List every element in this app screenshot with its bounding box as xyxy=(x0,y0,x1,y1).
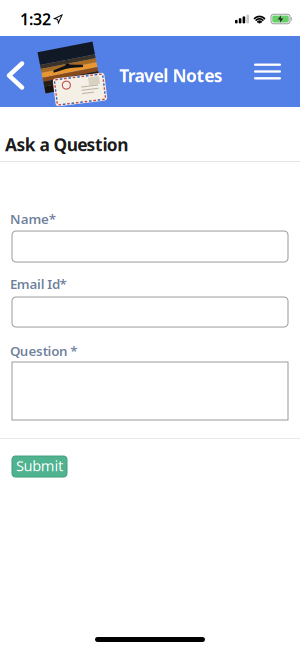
button[interactable]: Menu xyxy=(248,53,300,89)
staticText: Travel Notes xyxy=(119,64,223,87)
staticText: Question * xyxy=(10,342,77,360)
staticText: 1:32 xyxy=(20,8,51,30)
button[interactable]: Email Id xyxy=(12,297,288,327)
staticText: Name* xyxy=(10,210,56,228)
button[interactable]: Submit xyxy=(12,456,67,477)
button[interactable]: Name xyxy=(12,231,288,262)
button[interactable]: Question xyxy=(12,362,288,420)
button[interactable]: Back xyxy=(0,49,30,93)
staticText: Email Id* xyxy=(10,275,67,293)
staticText: Submit xyxy=(16,456,63,475)
staticText: Ask a Question xyxy=(5,133,128,156)
